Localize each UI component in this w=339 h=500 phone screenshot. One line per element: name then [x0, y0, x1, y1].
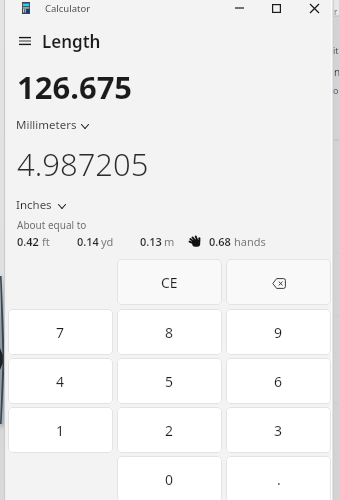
staticText: CE [161, 273, 178, 292]
staticText: Calculator [45, 2, 91, 15]
staticText: n [334, 65, 339, 79]
button[interactable]: CE [117, 259, 222, 305]
staticText: 9 [274, 323, 283, 342]
staticText: About equal to [17, 218, 87, 232]
staticText: 4.987205 [17, 143, 149, 185]
button[interactable]: 3 [226, 407, 331, 453]
button[interactable]: Maximize [261, 0, 292, 16]
staticText: Length [42, 30, 101, 53]
staticText: oi [333, 84, 339, 96]
staticText: 0 [165, 470, 174, 489]
staticText: 0.42 [17, 234, 39, 249]
button[interactable]: Millimeters [16, 117, 77, 133]
staticText: 3 [274, 421, 283, 440]
staticText: 7 [56, 323, 65, 342]
staticText: m [164, 234, 175, 249]
staticText: 1 [56, 421, 65, 440]
staticText: 0.14 [77, 234, 99, 249]
staticText: 2 [165, 421, 174, 440]
button[interactable]: 2 [117, 407, 222, 453]
button[interactable]: 6 [226, 358, 331, 404]
button[interactable]: 8 [117, 309, 222, 355]
staticText: Inches [16, 197, 52, 213]
staticText: 0.13 [140, 234, 162, 249]
button[interactable]: Backspace [226, 259, 331, 305]
button[interactable]: 0 [117, 456, 222, 500]
staticText: 6 [274, 372, 283, 391]
staticText: it [333, 44, 339, 56]
staticText: 5 [165, 372, 174, 391]
staticText: r [334, 6, 338, 17]
button[interactable]: 7 [8, 309, 113, 355]
staticText: 126.675 [17, 66, 133, 108]
staticText: 4 [56, 372, 65, 391]
button[interactable]: Inches [16, 197, 52, 213]
staticText: yd [101, 234, 114, 249]
button[interactable]: 5 [117, 358, 222, 404]
staticText: 8 [165, 323, 174, 342]
button[interactable]: Navigation menu [12, 28, 37, 53]
staticText: ft [42, 234, 50, 249]
staticText: Millimeters [16, 117, 77, 133]
button[interactable]: 1 [8, 407, 113, 453]
staticText: hands [234, 234, 266, 249]
button[interactable]: . [226, 456, 331, 500]
button[interactable]: 9 [226, 309, 331, 355]
staticText: . [277, 470, 281, 489]
button[interactable]: 4 [8, 358, 113, 404]
staticText: 0.68 [209, 234, 231, 249]
button[interactable]: Minimize [224, 0, 255, 16]
button[interactable]: Close [299, 0, 330, 16]
